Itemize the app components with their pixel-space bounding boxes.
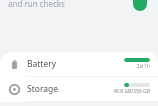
button[interactable]: Battery: [0, 52, 158, 76]
button[interactable]: Storage: [0, 77, 158, 101]
staticText: 49.8 GB/256 GB: [113, 88, 150, 95]
button[interactable]: Scan: [133, 0, 147, 11]
staticText: Battery: [27, 58, 57, 70]
staticText: and run checks: [8, 0, 65, 9]
staticText: 2d 1h: [136, 63, 150, 70]
staticText: Storage: [27, 83, 59, 95]
